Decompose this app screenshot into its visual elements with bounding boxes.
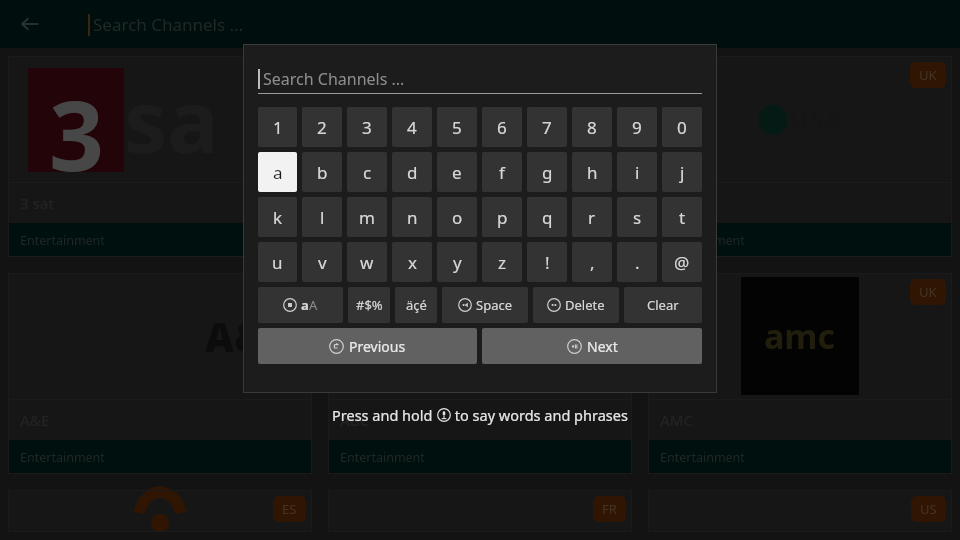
staticText: b (317, 161, 328, 184)
staticText: Press and hold (332, 405, 437, 425)
button[interactable]: USA (648, 56, 952, 257)
button[interactable]: a (258, 287, 343, 323)
button[interactable]: 6 (482, 107, 522, 147)
staticText: a (273, 161, 283, 184)
staticText: 2 (317, 116, 327, 139)
staticText: x (408, 251, 417, 274)
button[interactable]: s (617, 197, 657, 237)
button[interactable]: #$% (348, 287, 390, 323)
staticText: f (499, 161, 505, 184)
button[interactable]: Previous (258, 328, 477, 364)
button[interactable]: c (347, 152, 387, 192)
button[interactable]: ! (527, 242, 567, 282)
button[interactable]: 9 (617, 107, 657, 147)
button[interactable]: Back (14, 8, 46, 40)
staticText: A (309, 296, 318, 314)
staticText: US (920, 500, 937, 518)
button[interactable]: ABC (328, 273, 632, 474)
staticText: A&E (205, 309, 288, 363)
button[interactable]: v (302, 242, 342, 282)
button[interactable]: amc (648, 273, 952, 474)
staticText: Entertainment (340, 232, 425, 249)
staticText: d (407, 161, 418, 184)
button[interactable]: - - - - (648, 490, 952, 532)
button[interactable]: 7 (527, 107, 567, 147)
button[interactable]: FR (328, 490, 632, 532)
staticText: 6 (497, 116, 507, 139)
staticText: u (272, 251, 283, 274)
button[interactable]: b (302, 152, 342, 192)
staticText: w (360, 251, 374, 274)
button[interactable]: Clear (624, 287, 702, 323)
button[interactable]: m (347, 197, 387, 237)
staticText: Search Channels ... (263, 68, 405, 90)
staticText: t (679, 206, 686, 229)
staticText: A&E (20, 410, 50, 430)
button[interactable]: äçé (395, 287, 437, 323)
button[interactable]: a (258, 152, 297, 192)
button[interactable]: 8 (572, 107, 612, 147)
button[interactable]: j (662, 152, 702, 192)
staticText: Search Channels ... (93, 13, 244, 36)
staticText: o (452, 206, 463, 229)
staticText: Entertainment (20, 449, 105, 466)
button[interactable]: 4 (392, 107, 432, 147)
button[interactable]: r (572, 197, 612, 237)
button[interactable]: o (437, 197, 477, 237)
button[interactable]: e (437, 152, 477, 192)
button[interactable]: @ (662, 242, 702, 282)
button[interactable]: Delete (533, 287, 619, 323)
button[interactable]: 0 (662, 107, 702, 147)
button[interactable]: w (347, 242, 387, 282)
button[interactable]: y (437, 242, 477, 282)
staticText: ABC (340, 410, 370, 430)
button[interactable]: . (617, 242, 657, 282)
button[interactable]: 3 (8, 56, 312, 257)
staticText: @ (674, 251, 690, 274)
button[interactable]: ES (8, 490, 312, 532)
button[interactable]: Space (442, 287, 528, 323)
button[interactable]: g (527, 152, 567, 192)
staticText: 8 (587, 116, 597, 139)
staticText: Clear (647, 296, 679, 314)
button[interactable]: l (302, 197, 342, 237)
staticText: 9 (632, 116, 642, 139)
button[interactable]: n (392, 197, 432, 237)
button[interactable]: x (392, 242, 432, 282)
staticText: amc (764, 313, 836, 359)
staticText: 3 (49, 68, 104, 172)
staticText: Space (476, 296, 512, 314)
button[interactable]: A&E (8, 273, 312, 474)
staticText: Entertainment (20, 232, 105, 249)
staticText: p (497, 206, 508, 229)
staticText: ABC (340, 193, 370, 213)
button[interactable]: d (392, 152, 432, 192)
button[interactable]: t (662, 197, 702, 237)
button[interactable]: k (258, 197, 297, 237)
button[interactable]: 3 (347, 107, 387, 147)
button[interactable]: h (572, 152, 612, 192)
button[interactable]: 5 (437, 107, 477, 147)
staticText: s (633, 206, 642, 229)
button[interactable]: z (482, 242, 522, 282)
staticText: UK (919, 66, 937, 84)
button[interactable]: i (617, 152, 657, 192)
button[interactable]: p (482, 197, 522, 237)
button[interactable]: ABC (328, 56, 632, 257)
button[interactable]: f (482, 152, 522, 192)
button[interactable]: Next (482, 328, 702, 364)
button[interactable]: 1 (258, 107, 297, 147)
staticText: q (542, 206, 553, 229)
button[interactable]: q (527, 197, 567, 237)
staticText: m (359, 206, 375, 229)
staticText: 0 (677, 116, 687, 139)
staticText: i (635, 161, 640, 184)
staticText: UK (919, 283, 937, 301)
button[interactable]: , (572, 242, 612, 282)
button[interactable]: 2 (302, 107, 342, 147)
staticText: v (318, 251, 327, 274)
staticText: r (588, 206, 596, 229)
button[interactable]: u (258, 242, 297, 282)
